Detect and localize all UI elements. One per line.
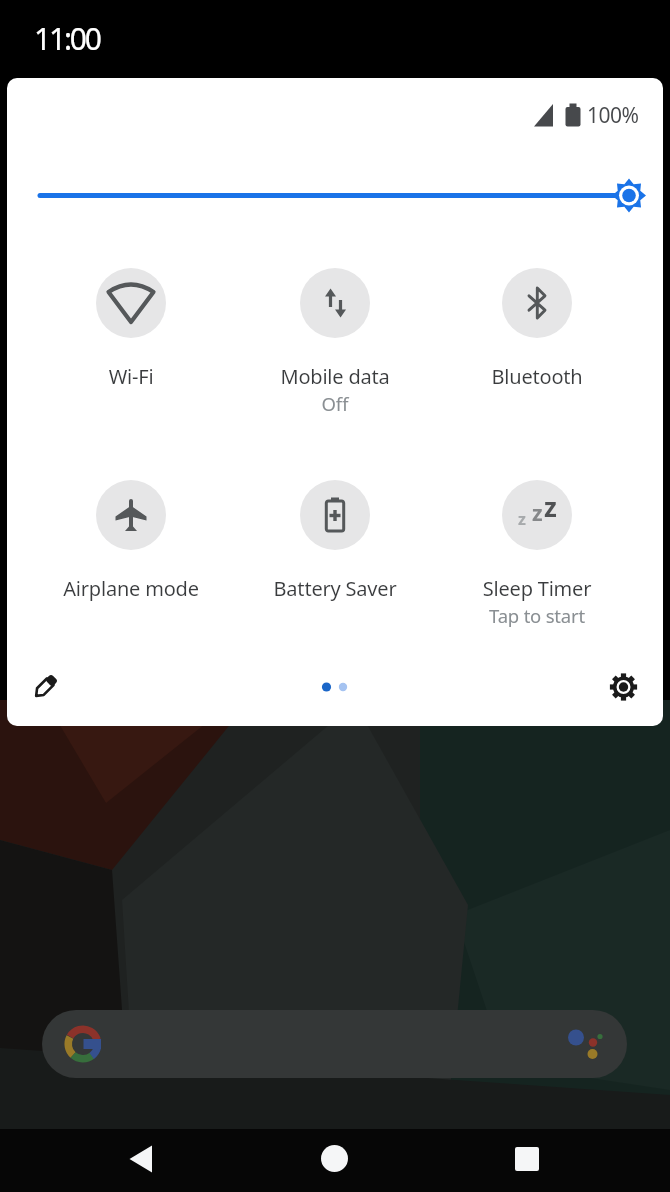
button[interactable] [300,480,370,550]
staticText: Tap to start [427,603,647,628]
staticText: Wi-Fi [21,363,241,390]
button[interactable] [42,1010,627,1078]
staticText: Airplane mode [21,575,241,602]
button[interactable] [502,480,572,550]
button[interactable] [33,171,653,219]
staticText: 11:00 [34,18,100,59]
staticText: Battery Saver [225,575,445,602]
button[interactable] [502,268,572,338]
button[interactable] [117,1135,165,1183]
button[interactable] [503,1135,551,1183]
button[interactable] [96,268,166,338]
staticText: 100% [587,101,639,130]
staticText: Off [225,391,445,416]
button[interactable] [599,663,647,711]
button[interactable] [21,663,69,711]
staticText: Mobile data [225,363,445,390]
staticText: z [518,508,526,530]
staticText: z [532,498,543,527]
staticText: z [544,489,557,524]
staticText: Sleep Timer [427,575,647,602]
button[interactable] [96,480,166,550]
staticText: Bluetooth [427,363,647,390]
button[interactable] [311,1135,359,1183]
button[interactable] [300,268,370,338]
